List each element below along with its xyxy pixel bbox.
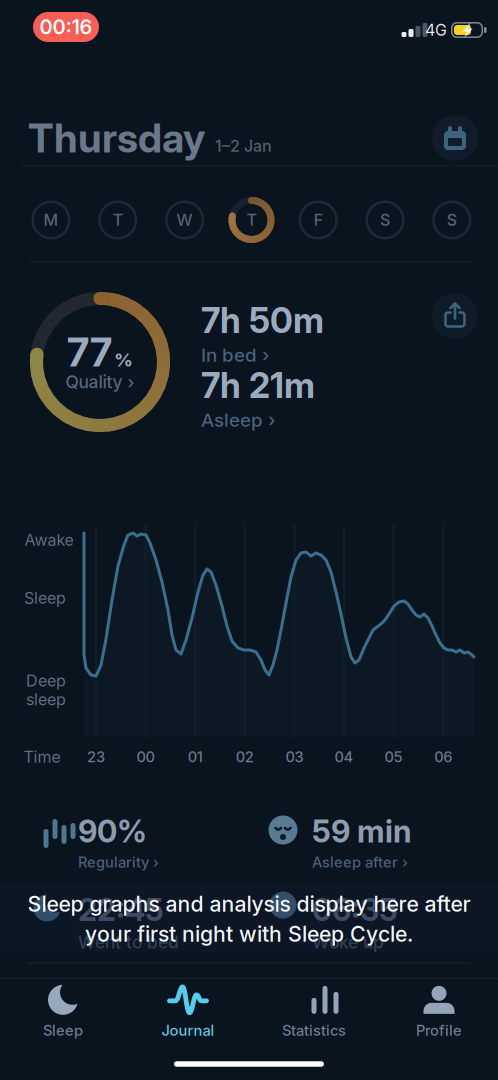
staticText: Asleep › xyxy=(201,409,275,431)
staticText: 00 xyxy=(137,748,155,766)
staticText: 59 min xyxy=(312,813,412,849)
staticText: 03 xyxy=(285,748,303,766)
staticText: 00:16 xyxy=(39,15,92,39)
staticText: F xyxy=(314,211,323,229)
staticText: Regularity › xyxy=(78,853,159,871)
staticText: Asleep after › xyxy=(312,853,408,871)
staticText: 02 xyxy=(236,748,254,766)
staticText: Deep xyxy=(26,671,66,690)
staticText: T xyxy=(246,211,256,229)
staticText: Journal xyxy=(161,1022,214,1039)
staticText: Statistics xyxy=(282,1022,346,1039)
staticText: 06 xyxy=(434,748,452,766)
staticText: your first night with Sleep Cycle. xyxy=(85,921,413,947)
staticText: Sleep graphs and analysis display here a… xyxy=(27,891,470,916)
staticText: Awake xyxy=(24,531,73,549)
staticText: 4G xyxy=(425,21,447,39)
staticText: Sleep xyxy=(24,589,66,607)
button[interactable]: Sleep xyxy=(8,982,118,1042)
staticText: 7h 50m xyxy=(201,300,324,341)
button[interactable]: Profile xyxy=(384,982,494,1042)
staticText: Went to bed xyxy=(78,932,179,952)
button[interactable]: Thursday xyxy=(227,196,275,244)
staticText: In bed › xyxy=(201,344,269,366)
staticText: S xyxy=(380,211,390,229)
staticText: 04 xyxy=(334,748,353,766)
staticText: Time xyxy=(23,748,60,766)
staticText: Quality › xyxy=(65,372,134,392)
staticText: T xyxy=(113,211,123,229)
button[interactable]: Sunday xyxy=(428,196,476,244)
staticText: Profile xyxy=(416,1022,462,1039)
button[interactable]: 7h 21m xyxy=(201,365,371,431)
button[interactable]: Wednesday xyxy=(161,196,209,244)
staticText: sleep xyxy=(26,690,66,709)
button[interactable]: Recording 00:16 xyxy=(33,12,99,42)
staticText: 7h 21m xyxy=(201,365,315,406)
button[interactable]: Quality › xyxy=(65,372,134,392)
button[interactable]: Calendar xyxy=(432,115,478,161)
staticText: 1–2 Jan xyxy=(215,137,272,155)
button[interactable]: Journal xyxy=(133,982,243,1042)
button[interactable]: Monday xyxy=(27,196,75,244)
button[interactable]: Tuesday xyxy=(94,196,142,244)
button[interactable]: Saturday xyxy=(361,196,409,244)
staticText: 23 xyxy=(87,748,105,766)
staticText: 22:45 xyxy=(78,892,164,928)
button[interactable]: 7h 50m xyxy=(201,300,371,366)
staticText: 05 xyxy=(385,748,403,766)
staticText: 90% xyxy=(78,813,147,849)
staticText: Thursday xyxy=(28,114,205,162)
staticText: M xyxy=(43,211,58,229)
staticText: Sleep xyxy=(43,1022,83,1039)
staticText: % xyxy=(114,349,133,371)
staticText: 77 xyxy=(67,328,112,376)
button[interactable]: 59 min xyxy=(312,813,482,871)
staticText: Woke up xyxy=(312,932,384,952)
staticText: 01 xyxy=(188,748,203,766)
button[interactable]: Statistics xyxy=(259,982,369,1042)
button[interactable]: Friday xyxy=(294,196,342,244)
staticText: 06:35 xyxy=(312,892,398,928)
button[interactable]: Share xyxy=(432,293,478,339)
button[interactable]: 90% xyxy=(78,813,248,871)
staticText: S xyxy=(447,211,457,229)
staticText: W xyxy=(177,211,193,229)
